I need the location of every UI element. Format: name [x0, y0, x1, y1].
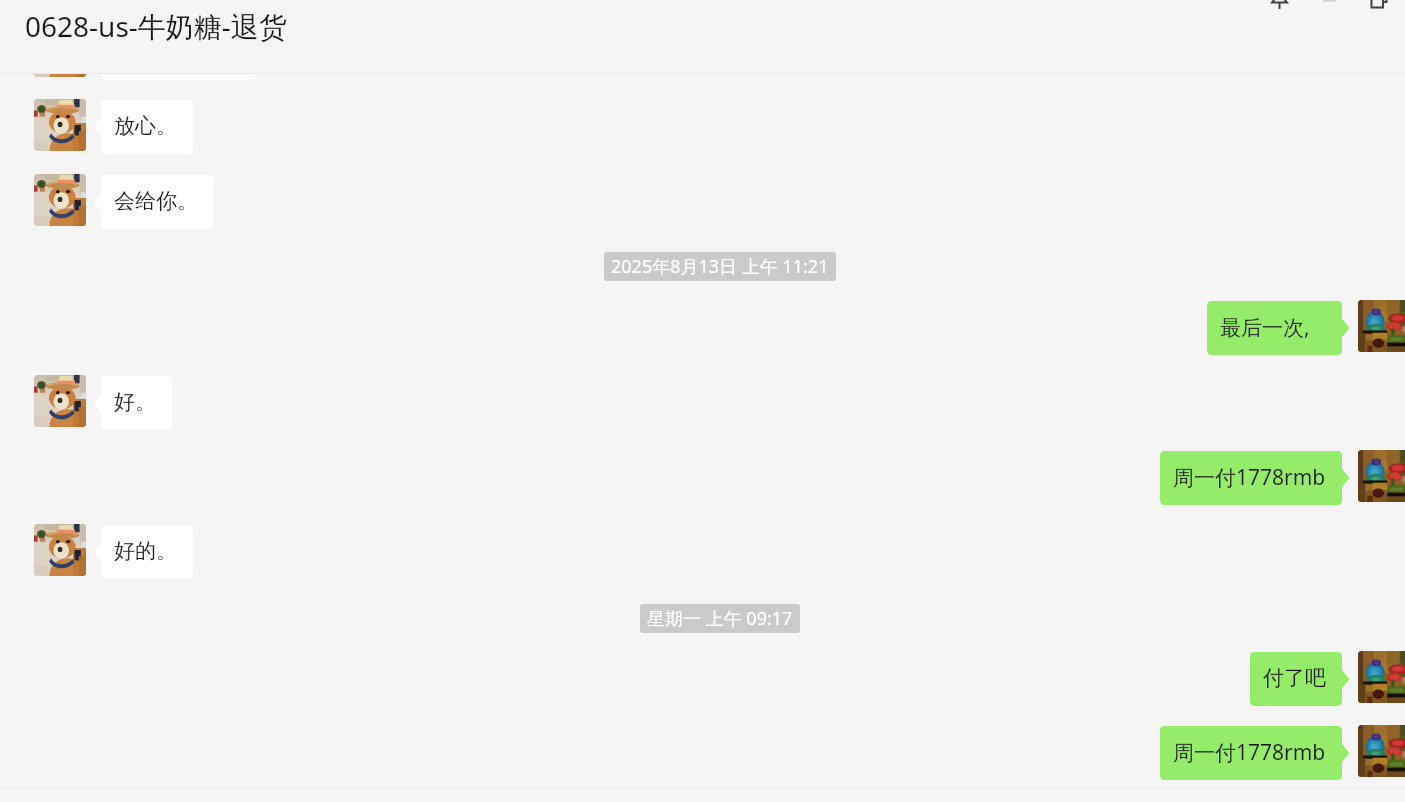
button[interactable]: 周一付1778rmb	[1160, 726, 1350, 780]
button[interactable]: Avatar	[34, 99, 86, 151]
button[interactable]: 放心。	[93, 100, 193, 154]
button[interactable]: 周一付1778rmb	[1160, 451, 1350, 505]
button[interactable]: Avatar	[1358, 300, 1405, 352]
staticText: 2025年8月13日 上午 11:21	[611, 254, 829, 279]
staticText: 会给你。	[114, 188, 198, 214]
button[interactable]: Minimize	[1307, 0, 1352, 24]
staticText: 周一付1778rmb	[1173, 738, 1326, 767]
button[interactable]: Pin conversation	[1257, 0, 1302, 24]
button[interactable]: Maximize	[1356, 0, 1401, 24]
staticText: 0628-us-牛奶糖-退货	[25, 7, 287, 45]
button[interactable]: Avatar	[1358, 725, 1405, 777]
button[interactable]: Avatar	[34, 375, 86, 427]
staticText: 放心。	[114, 113, 177, 139]
staticText: 好。	[114, 389, 156, 415]
staticText: 好的。	[114, 538, 177, 564]
button[interactable]: 最后一次,	[1207, 301, 1350, 355]
staticText: 付了吧	[1263, 665, 1326, 691]
button[interactable]: 好的。	[93, 525, 193, 579]
button[interactable]: 会给你。	[93, 175, 214, 229]
button[interactable]: 付了吧	[1250, 652, 1350, 706]
staticText: 最后一次,	[1220, 313, 1310, 342]
button[interactable]: 好。	[93, 376, 172, 430]
staticText: 星期一 上午 09:17	[647, 606, 793, 631]
button[interactable]: Avatar	[34, 524, 86, 576]
button[interactable]: Avatar	[1358, 651, 1405, 703]
button[interactable]: Avatar	[34, 174, 86, 226]
button[interactable]: Avatar	[34, 74, 86, 77]
staticText: 周一付1778rmb	[1173, 463, 1326, 492]
button[interactable]: Avatar	[1358, 450, 1405, 502]
